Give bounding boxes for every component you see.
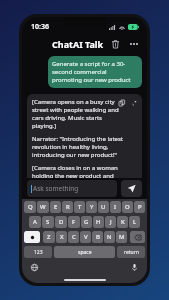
staticText: N [107,233,112,241]
staticText: Q [28,203,33,211]
staticText: W [40,203,46,211]
button[interactable]: Shift [24,231,40,243]
button[interactable]: W [37,201,49,213]
staticText: A [33,218,37,226]
staticText: T [78,203,82,211]
staticText: Y [90,203,94,211]
staticText: C [72,233,76,241]
button[interactable]: Delete conversation [109,37,122,50]
staticText: P [138,203,142,211]
staticText: M [119,233,125,241]
staticText: S [46,218,50,226]
button[interactable]: C [68,231,79,243]
button[interactable]: Share [129,98,138,107]
button[interactable]: T [74,201,85,213]
staticText: K [121,218,125,226]
staticText: ChatAI Talk [52,38,104,50]
staticText: E [54,203,58,211]
button[interactable]: O [122,201,133,213]
staticText: Ask something [33,184,79,193]
staticText: return [124,249,139,256]
staticText: R [66,203,70,211]
staticText: U [101,203,106,211]
button[interactable]: F [68,216,80,228]
button[interactable]: Y [86,201,97,213]
button[interactable]: [Camera opens on a busy city street with… [27,94,142,178]
button[interactable]: L [129,216,140,228]
button[interactable]: D [55,216,67,228]
button[interactable]: N [104,231,115,243]
button[interactable]: S [42,216,54,228]
button[interactable]: Z [43,231,55,243]
staticText: B [96,233,100,241]
staticText: Z [47,233,51,241]
button[interactable]: R [62,201,73,213]
staticText: Narrator: "Introducing the latest revolu… [32,135,137,159]
staticText: Generate a script for a 30-second commer… [52,60,138,84]
button[interactable]: Voice input [129,262,140,273]
staticText: I [114,203,117,211]
staticText: V [84,233,88,241]
staticText: space [78,249,92,256]
button[interactable]: Backspace [130,231,145,243]
staticText: [Camera opens on a busy city street with… [32,98,121,130]
button[interactable]: B [92,231,103,243]
staticText: L [133,218,137,226]
button[interactable]: 123 [24,246,52,258]
button[interactable]: Send [121,180,142,197]
staticText: [Camera closes in on a woman holding the… [32,164,137,178]
staticText: X [60,233,64,241]
staticText: D [59,218,64,226]
button[interactable]: Generate a script for a 30-second commer… [48,56,142,88]
button[interactable]: V [80,231,91,243]
staticText: F [72,218,76,226]
button[interactable]: I [110,201,121,213]
staticText: G [84,218,89,226]
button[interactable]: X [56,231,67,243]
button[interactable]: Ask something [27,180,117,197]
button[interactable]: Q [24,201,36,213]
button[interactable]: A [29,216,41,228]
button[interactable]: G [81,216,92,228]
button[interactable]: H [93,216,104,228]
button[interactable]: space [54,246,115,258]
button[interactable]: Copy [117,98,126,107]
button[interactable]: P [134,201,145,213]
staticText: 10:36 [31,22,49,32]
staticText: O [125,203,130,211]
button[interactable]: J [105,216,116,228]
button[interactable]: K [117,216,128,228]
button[interactable]: M [116,231,127,243]
staticText: J [110,218,112,226]
staticText: 123 [34,249,43,256]
button[interactable]: return [117,246,145,258]
button[interactable]: More options [127,37,140,50]
button[interactable]: Change keyboard language [29,262,40,273]
staticText: H [96,218,101,226]
button[interactable]: U [98,201,109,213]
button[interactable]: E [50,201,61,213]
